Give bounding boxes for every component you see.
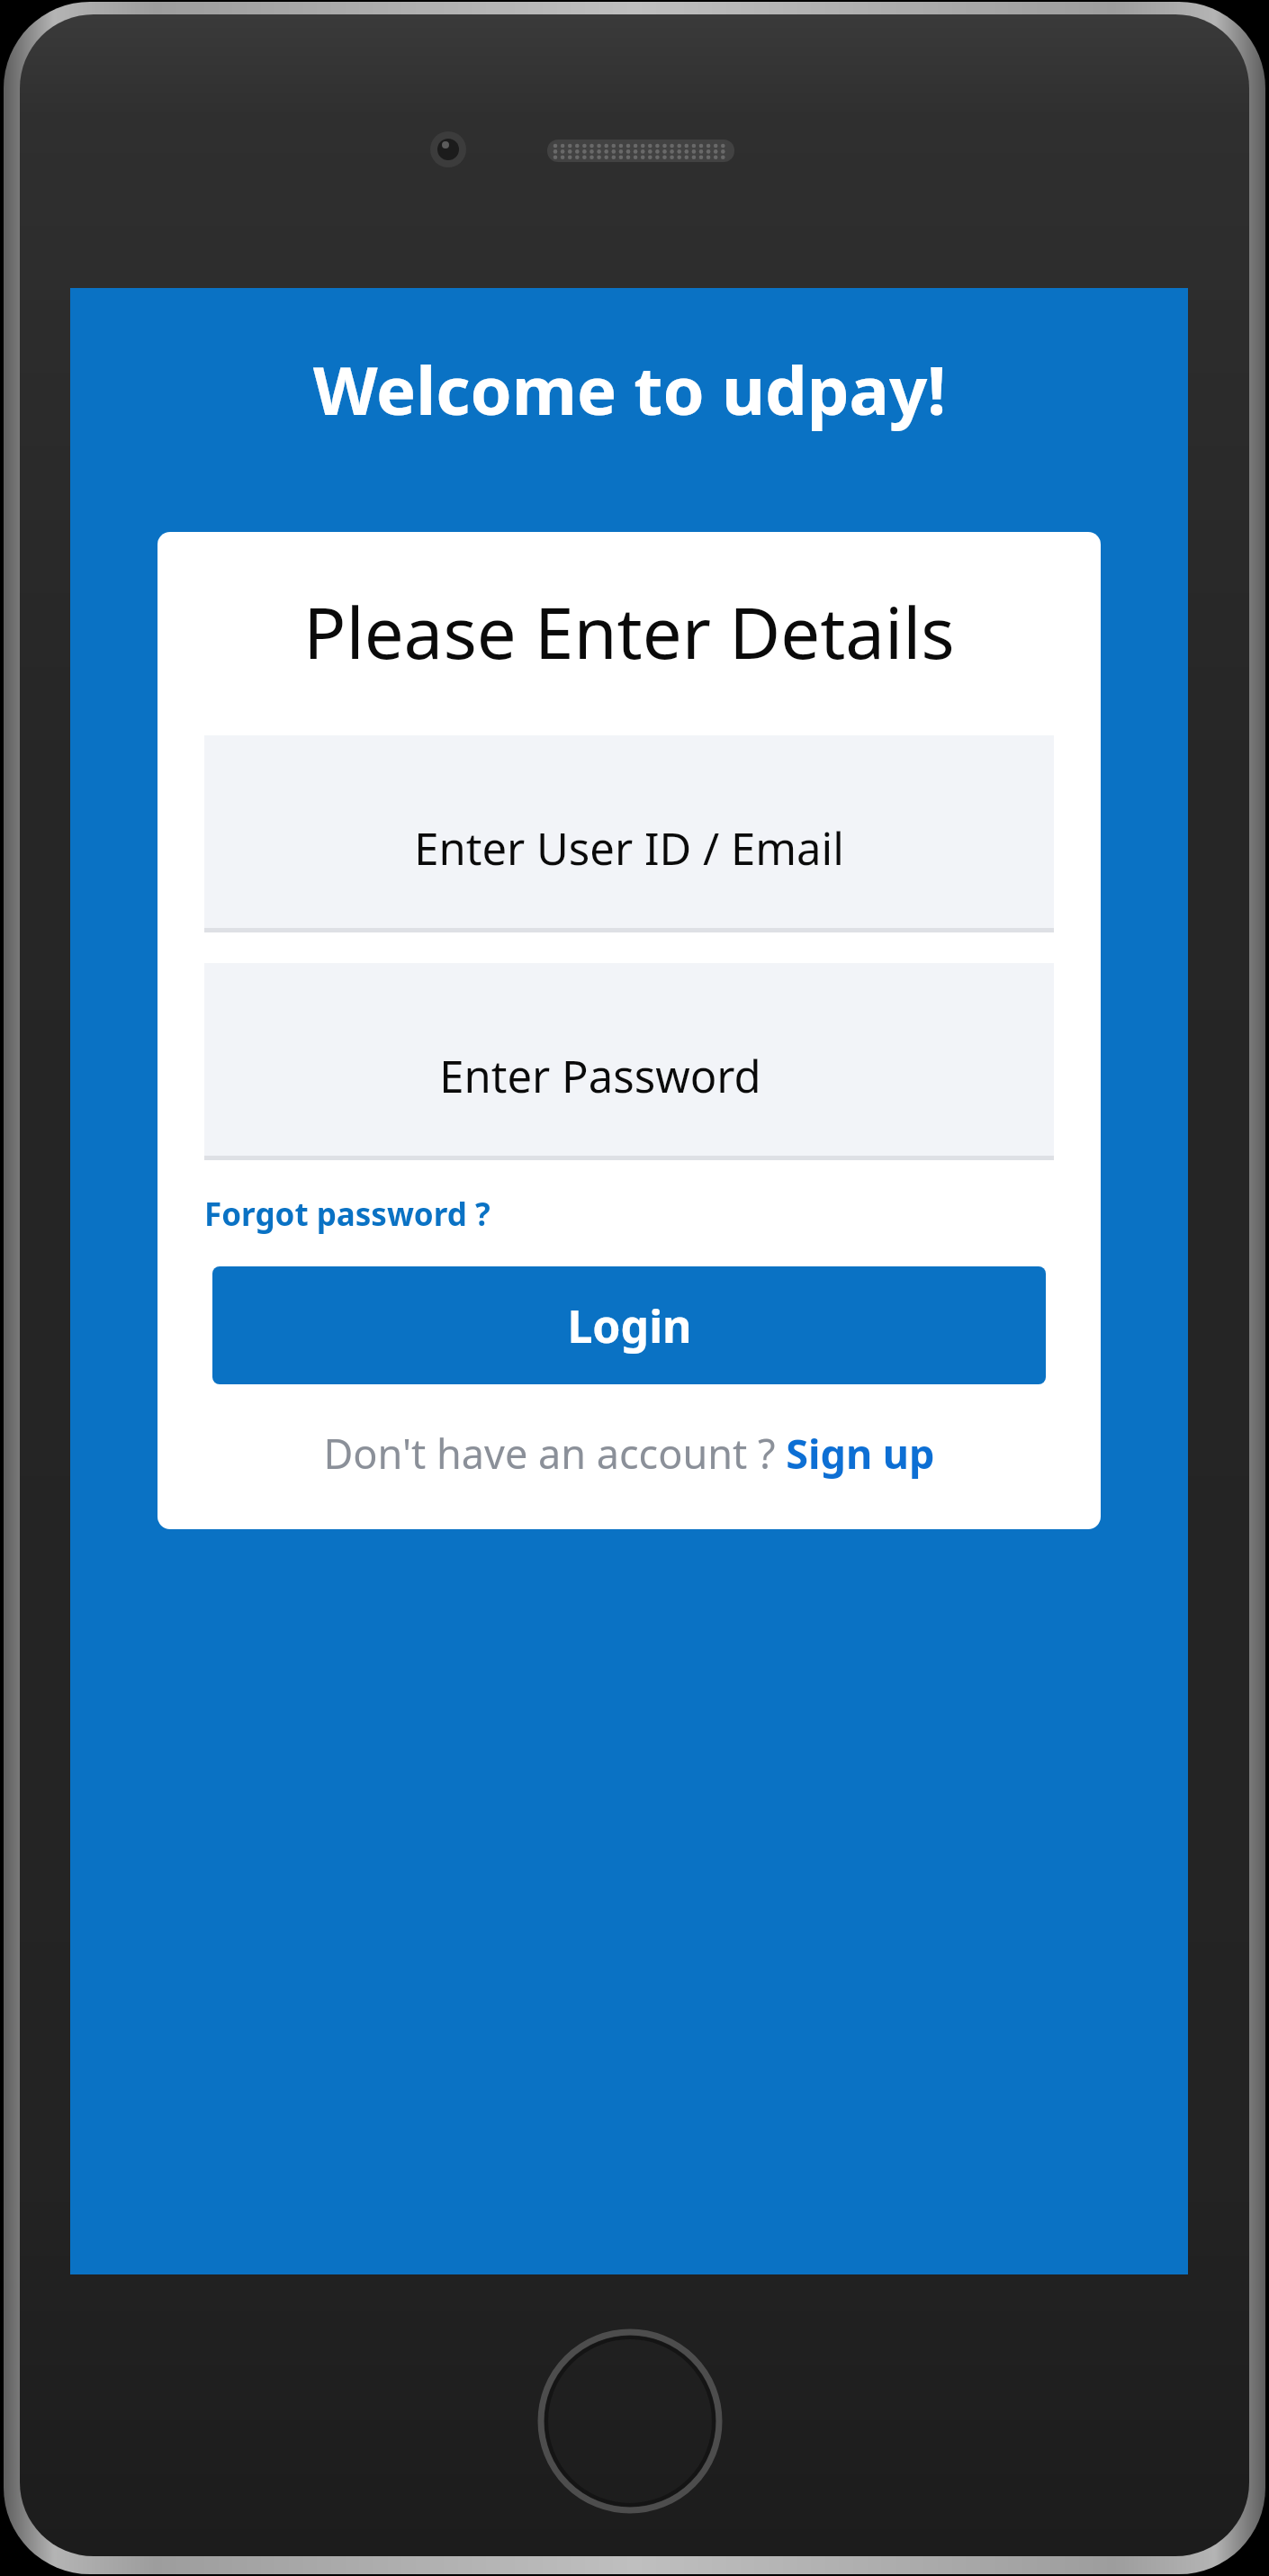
- button[interactable]: Forgot password ?: [201, 1187, 494, 1241]
- staticText: Enter User ID / Email: [414, 818, 844, 878]
- staticText: Don't have an account ? Sign up: [323, 1426, 935, 1481]
- button[interactable]: Enter Password: [204, 963, 1054, 1160]
- staticText: Please Enter Details: [303, 584, 955, 680]
- button[interactable]: Enter User ID / Email: [204, 735, 1054, 932]
- staticText: Login: [567, 1295, 692, 1356]
- staticText: Forgot password ?: [204, 1193, 490, 1236]
- staticText: Enter Password: [439, 1046, 761, 1106]
- button[interactable]: Don't have an account ? Sign up: [312, 1420, 946, 1486]
- button[interactable]: Login: [212, 1266, 1046, 1384]
- staticText: Welcome to udpay!: [313, 344, 946, 435]
